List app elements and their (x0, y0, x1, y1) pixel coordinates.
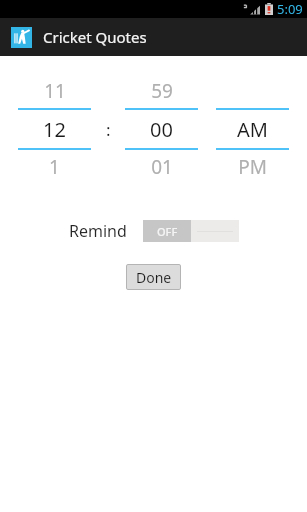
staticText: Remind (69, 220, 127, 242)
staticText: AM (237, 116, 268, 143)
staticText: 01 (151, 154, 173, 180)
staticText: 00 (150, 116, 173, 143)
staticText: OFF (157, 224, 178, 239)
staticText: 59 (151, 78, 173, 104)
staticText: 5:09 (277, 0, 303, 18)
staticText: 12 (43, 116, 66, 143)
button[interactable]: AM (212, 74, 293, 184)
staticText: : (106, 118, 111, 141)
button[interactable]: Done (126, 264, 181, 290)
button[interactable]: 11 (14, 74, 95, 184)
button[interactable]: Toggle reminder (143, 220, 239, 242)
staticText: Done (136, 268, 172, 287)
staticText: 1 (49, 154, 60, 180)
staticText: PM (238, 154, 267, 180)
button[interactable]: 59 (121, 74, 202, 184)
staticText: 11 (44, 78, 66, 104)
staticText: Cricket Quotes (43, 27, 147, 47)
